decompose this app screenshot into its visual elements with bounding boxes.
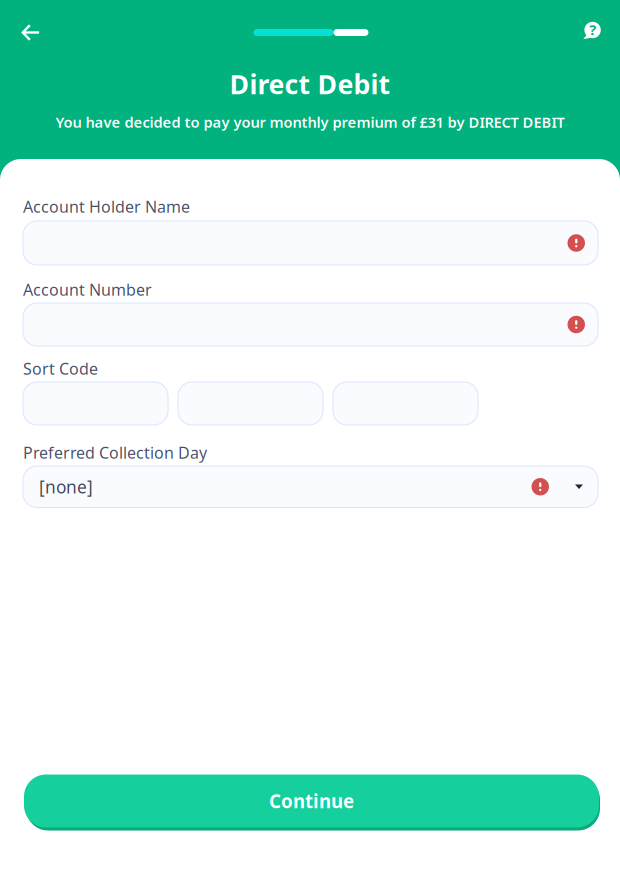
button[interactable]: Preferred Collection Day bbox=[23, 466, 598, 507]
staticText: ? bbox=[589, 20, 596, 39]
staticText: Continue bbox=[269, 789, 354, 813]
button[interactable]: Sort code part 1 bbox=[23, 382, 168, 425]
staticText: You have decided to pay your monthly pre… bbox=[55, 112, 564, 132]
button[interactable]: Back bbox=[8, 9, 54, 55]
button[interactable]: Account Holder Name bbox=[23, 221, 598, 265]
staticText: Sort Code bbox=[23, 358, 98, 379]
staticText: Preferred Collection Day bbox=[23, 442, 207, 463]
button[interactable]: Sort code part 3 bbox=[333, 382, 478, 425]
button[interactable]: Sort code part 2 bbox=[178, 382, 323, 425]
staticText: Account Number bbox=[23, 279, 152, 300]
staticText: Account Holder Name bbox=[23, 196, 190, 217]
button[interactable]: Continue bbox=[23, 773, 600, 829]
staticText: Direct Debit bbox=[229, 66, 390, 102]
staticText: [none] bbox=[39, 475, 93, 498]
button[interactable]: Account Number bbox=[23, 303, 598, 346]
button[interactable]: Help bbox=[569, 7, 615, 53]
